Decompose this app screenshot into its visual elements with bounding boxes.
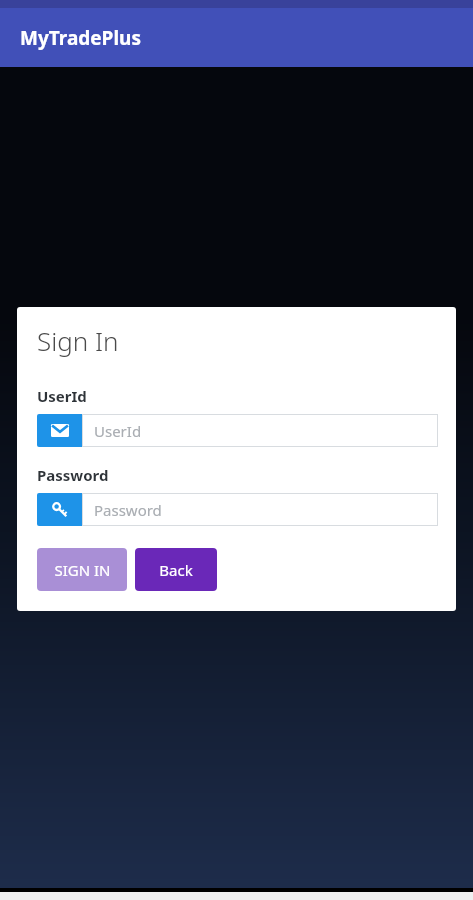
staticText: UserId bbox=[94, 421, 142, 441]
staticText: Back bbox=[159, 560, 193, 580]
button[interactable]: UserId bbox=[37, 414, 438, 447]
staticText: SIGN IN bbox=[54, 560, 111, 580]
staticText: MyTradePlus bbox=[20, 25, 141, 51]
staticText: Password bbox=[37, 465, 109, 485]
button[interactable]: SIGN IN bbox=[37, 548, 127, 591]
button[interactable]: Back bbox=[135, 548, 217, 591]
button[interactable]: Password bbox=[37, 493, 438, 526]
staticText: Password bbox=[94, 500, 162, 520]
staticText: Sign In bbox=[37, 323, 119, 358]
other: Password bbox=[37, 493, 82, 526]
staticText: UserId bbox=[37, 386, 87, 406]
other: UserId bbox=[37, 414, 82, 447]
